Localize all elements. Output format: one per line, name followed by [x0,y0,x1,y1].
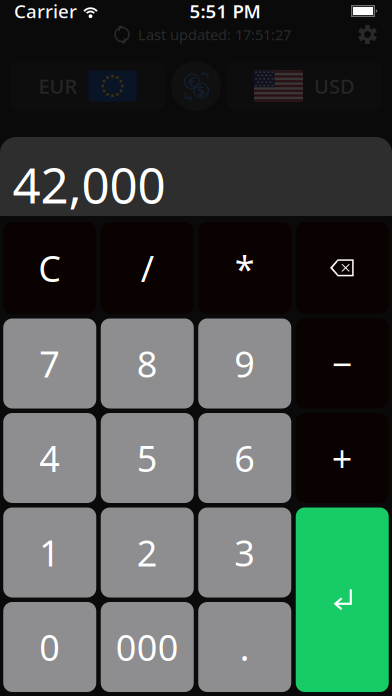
staticText: 000 [116,623,179,671]
button[interactable]: Last updated: 17:51:27 [113,24,291,45]
staticText: 8 [137,340,158,387]
button[interactable]: . [198,602,291,692]
button[interactable]: 8 [101,318,194,408]
button[interactable]: 6 [198,413,291,503]
staticText: . [240,623,250,671]
button[interactable]: Enter [296,507,389,692]
button[interactable]: 5 [101,413,194,503]
button[interactable]: 9 [198,318,291,408]
button[interactable]: / [101,222,194,314]
staticText: + [332,434,353,482]
button[interactable]: * [198,222,291,314]
staticText: 5 [137,434,158,482]
staticText: USD [314,73,355,99]
staticText: 4 [39,434,60,482]
button[interactable]: 2 [101,507,194,597]
button[interactable]: 1 [3,507,96,597]
button[interactable]: Swap currencies [169,61,223,111]
staticText: Last updated: 17:51:27 [138,25,291,44]
button[interactable]: C [3,222,96,314]
staticText: 3 [234,529,255,576]
staticText: 6 [234,434,255,482]
staticText: − [332,340,353,387]
button[interactable]: 000 [101,602,194,692]
staticText: 9 [234,340,255,387]
button[interactable]: 4 [3,413,96,503]
staticText: / [141,244,154,292]
button[interactable]: Settings [358,24,377,45]
staticText: 1 [39,529,60,576]
button[interactable]: 7 [3,318,96,408]
staticText: 5:51 PM [189,0,260,23]
staticText: 7 [39,340,60,387]
button[interactable]: + [296,413,389,503]
staticText: $ [197,81,205,100]
staticText: 0 [39,623,60,671]
staticText: * [235,244,255,292]
staticText: EUR [38,73,77,99]
button[interactable]: EUR [10,61,165,111]
button[interactable]: − [296,318,389,408]
staticText: 42,000 [13,151,166,217]
button[interactable]: 3 [198,507,291,597]
staticText: Carrier [14,0,77,23]
staticText: 2 [137,529,158,576]
staticText: C [38,244,61,292]
button[interactable]: Backspace [296,222,389,314]
button[interactable]: 0 [3,602,96,692]
button[interactable]: USD [227,61,382,111]
staticText: € [188,72,196,91]
